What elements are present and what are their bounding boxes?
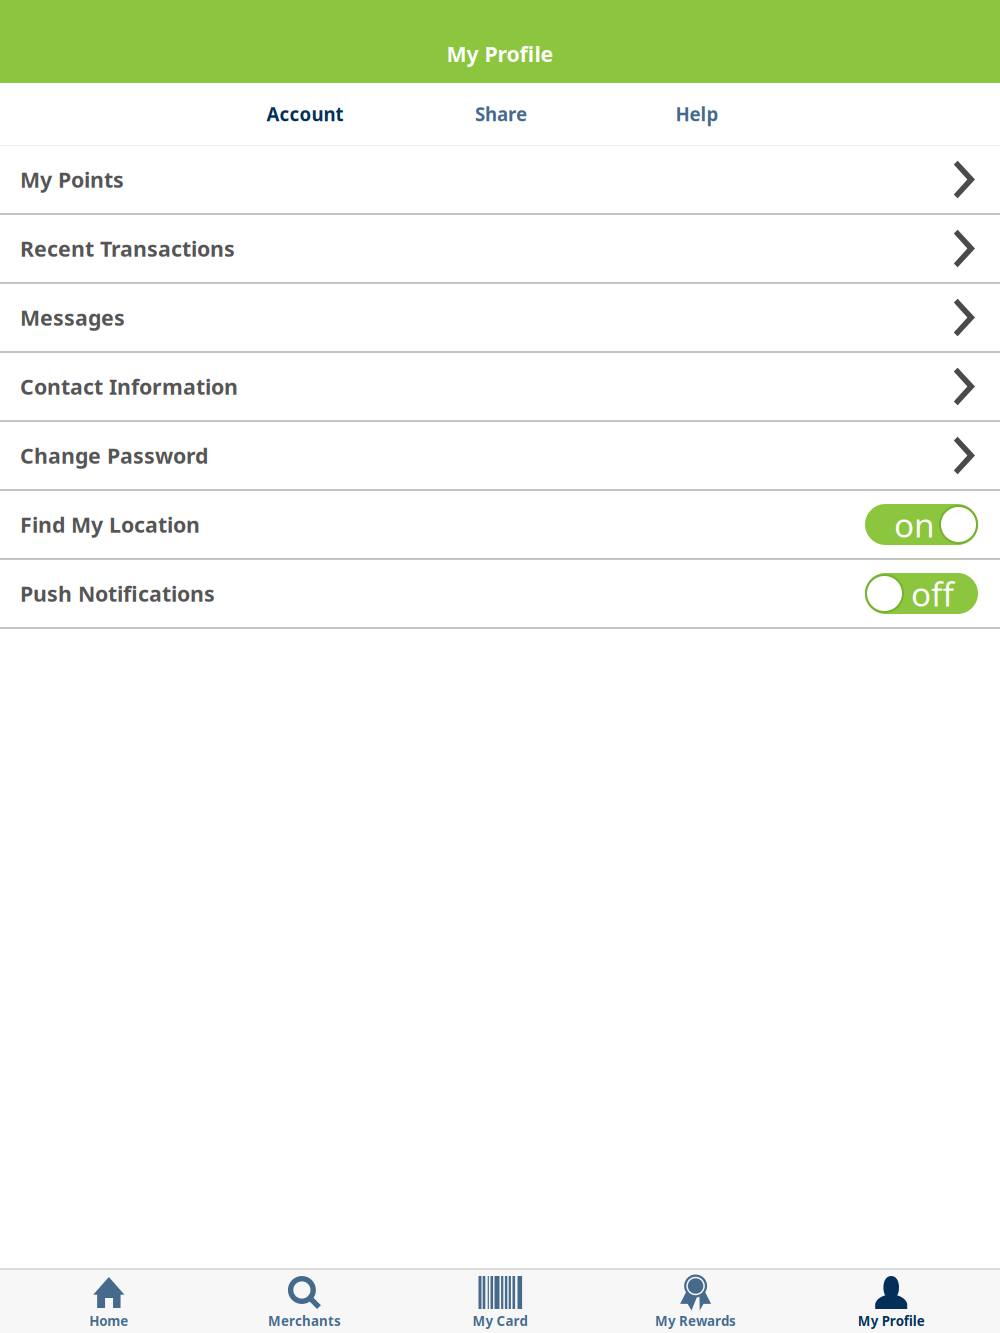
button[interactable]: Change Password [0,422,1000,491]
staticText: Recent Transactions [20,234,235,263]
button[interactable]: Account [207,83,403,145]
button[interactable]: My Rewards [598,1270,793,1333]
button[interactable]: off [865,573,978,614]
button[interactable]: Messages [0,284,1000,353]
button[interactable]: My Card [402,1270,598,1333]
button[interactable]: Help [599,83,795,145]
button[interactable]: Share [403,83,599,145]
staticText: Find My Location [20,510,200,539]
button[interactable]: Merchants [207,1270,402,1333]
staticText: off [911,571,954,616]
button[interactable]: My Profile [793,1270,989,1333]
staticText: My Profile [446,40,553,68]
staticText: My Points [20,165,124,194]
staticText: Share [475,102,527,126]
staticText: My Rewards [655,1312,736,1330]
staticText: Merchants [268,1312,341,1330]
staticText: My Profile [858,1312,925,1330]
staticText: on [894,502,935,547]
staticText: Push Notifications [20,579,215,608]
staticText: My Card [472,1312,527,1330]
button[interactable]: Home [11,1270,207,1333]
staticText: Messages [20,303,125,332]
button[interactable]: Recent Transactions [0,215,1000,284]
staticText: Home [89,1312,128,1330]
staticText: Help [675,102,718,126]
staticText: Change Password [20,441,208,470]
button[interactable]: on [865,504,978,545]
button[interactable]: My Points [0,146,1000,215]
staticText: Contact Information [20,372,238,401]
button[interactable]: Contact Information [0,353,1000,422]
staticText: Account [266,102,343,126]
